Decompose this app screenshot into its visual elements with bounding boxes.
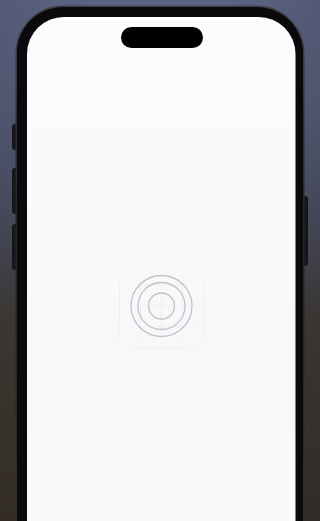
button[interactable]: Volume down [9, 222, 23, 272]
button[interactable]: Mute [9, 122, 23, 152]
button[interactable]: Power [297, 194, 311, 268]
button[interactable]: Volume up [9, 166, 23, 216]
button[interactable]: Loading preview [27, 17, 296, 521]
